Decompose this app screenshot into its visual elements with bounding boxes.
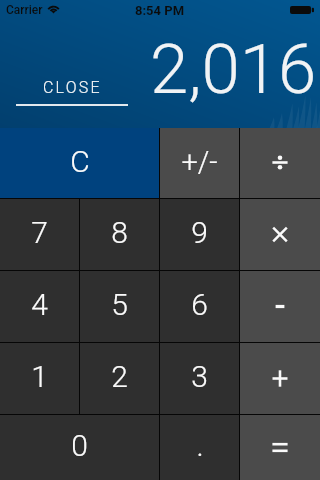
staticText: . bbox=[196, 428, 204, 463]
button[interactable]: Divide bbox=[240, 128, 320, 198]
staticText: 8:54 PM bbox=[135, 3, 185, 18]
staticText: 6 bbox=[191, 287, 208, 322]
button[interactable]: 9 bbox=[160, 199, 239, 270]
button[interactable]: 5 bbox=[80, 271, 159, 342]
staticText: 3 bbox=[191, 359, 208, 394]
button[interactable]: 7 bbox=[0, 199, 79, 270]
button[interactable]: Add bbox=[240, 343, 320, 414]
button[interactable]: Clear bbox=[0, 128, 159, 198]
button[interactable]: 3 bbox=[160, 343, 239, 414]
staticText: 2 bbox=[111, 359, 128, 394]
staticText: +/- bbox=[181, 145, 218, 179]
staticText: CLOSE bbox=[43, 78, 102, 97]
button[interactable]: CLOSE bbox=[16, 78, 128, 106]
button[interactable]: Plus minus bbox=[160, 128, 239, 198]
button[interactable]: 6 bbox=[160, 271, 239, 342]
button[interactable]: 4 bbox=[0, 271, 79, 342]
button[interactable]: Zero bbox=[0, 415, 159, 480]
staticText: 5 bbox=[111, 287, 128, 322]
staticText: Carrier bbox=[6, 3, 43, 17]
staticText: 9 bbox=[191, 215, 208, 250]
button[interactable]: Equals bbox=[240, 415, 320, 480]
button[interactable]: Decimal point bbox=[160, 415, 239, 480]
staticText: 1 bbox=[31, 359, 48, 394]
staticText: 0 bbox=[71, 428, 88, 463]
button[interactable]: Subtract bbox=[240, 271, 320, 342]
staticText: 8 bbox=[111, 215, 128, 250]
button[interactable]: 1 bbox=[0, 343, 79, 414]
button[interactable]: Multiply bbox=[240, 199, 320, 270]
staticText: 7 bbox=[31, 215, 48, 250]
staticText: 4 bbox=[31, 287, 48, 322]
button[interactable]: 2 bbox=[80, 343, 159, 414]
staticText: 2,016 bbox=[150, 29, 317, 110]
staticText: C bbox=[70, 144, 90, 179]
button[interactable]: 8 bbox=[80, 199, 159, 270]
